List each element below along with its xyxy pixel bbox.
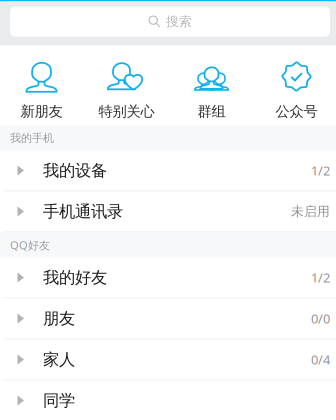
button[interactable]: 特别关心: [84, 45, 169, 125]
staticText: 0/0: [311, 310, 330, 327]
staticText: 我的手机: [10, 131, 54, 145]
staticText: 未启用: [291, 203, 330, 219]
staticText: 手机通讯录: [43, 201, 123, 222]
staticText: 1/2: [311, 162, 330, 179]
button[interactable]: 同学: [0, 380, 336, 420]
button[interactable]: 朋友: [0, 298, 336, 339]
staticText: 1/2: [311, 269, 330, 286]
button[interactable]: 新朋友: [0, 45, 84, 125]
button[interactable]: 家人: [0, 339, 336, 380]
staticText: 新朋友: [20, 102, 62, 120]
button[interactable]: 公众号: [254, 45, 336, 125]
button[interactable]: 手机通讯录: [0, 191, 336, 232]
staticText: 公众号: [275, 102, 317, 120]
staticText: QQ好友: [10, 237, 50, 252]
button[interactable]: 我的好友: [0, 257, 336, 298]
staticText: 搜索: [166, 13, 192, 29]
staticText: 朋友: [43, 308, 75, 329]
staticText: 0/4: [311, 351, 330, 368]
staticText: 同学: [43, 390, 75, 411]
staticText: 我的设备: [43, 160, 107, 181]
staticText: 我的好友: [43, 267, 107, 288]
staticText: 家人: [43, 349, 75, 370]
staticText: 特别关心: [98, 102, 154, 120]
button[interactable]: 群组: [169, 45, 254, 125]
button[interactable]: 搜索: [0, 1, 336, 45]
staticText: 群组: [197, 102, 225, 120]
button[interactable]: 我的设备: [0, 150, 336, 191]
